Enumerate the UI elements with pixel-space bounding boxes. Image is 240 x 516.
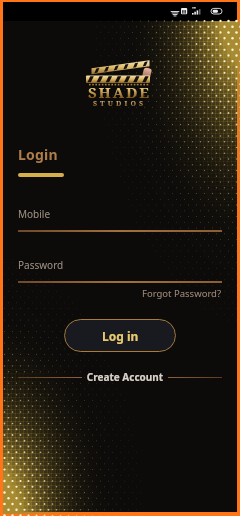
button[interactable]: Log in xyxy=(64,319,176,352)
button[interactable]: Forgot Password? xyxy=(142,287,222,300)
staticText: STUDIOS xyxy=(93,99,147,109)
staticText: Log in xyxy=(102,328,139,344)
staticText: SHADE xyxy=(88,82,152,102)
staticText: Mobile xyxy=(18,207,51,221)
staticText: Password xyxy=(18,258,64,272)
staticText: Login xyxy=(18,145,58,164)
button[interactable]: Create Account xyxy=(82,370,168,384)
